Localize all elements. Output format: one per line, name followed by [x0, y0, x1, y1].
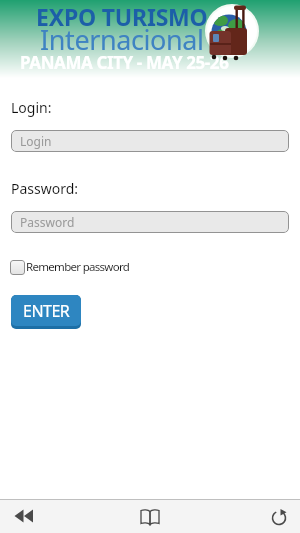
- button[interactable]: ENTER: [11, 295, 81, 329]
- staticText: Internacional: [40, 21, 204, 58]
- button[interactable]: [14, 509, 34, 523]
- staticText: Login:: [11, 98, 52, 117]
- button[interactable]: Password: [11, 211, 289, 233]
- staticText: Login: [20, 133, 52, 149]
- staticText: ENTER: [23, 300, 70, 322]
- button[interactable]: [140, 509, 160, 526]
- button[interactable]: Login: [11, 130, 289, 152]
- staticText: Remember password: [26, 259, 130, 275]
- button[interactable]: Remember password: [10, 259, 130, 275]
- staticText: PANAMA CITY - MAY 25-26: [20, 51, 229, 74]
- button[interactable]: [271, 509, 287, 525]
- staticText: EXPO TURISMO: [36, 1, 208, 32]
- staticText: Password: [20, 214, 75, 230]
- staticText: Password:: [11, 179, 79, 198]
